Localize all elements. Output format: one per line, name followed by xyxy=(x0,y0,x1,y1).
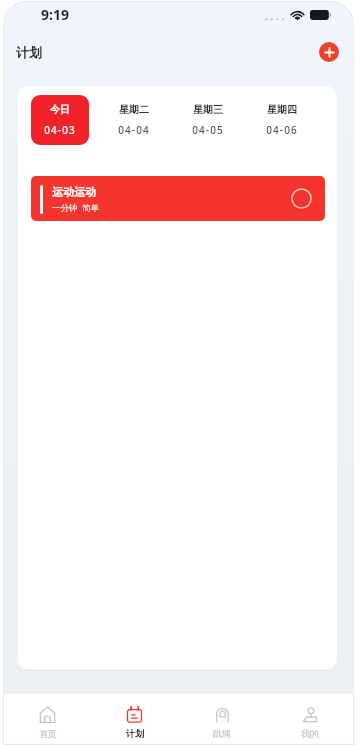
staticText: 星期三 xyxy=(193,103,223,116)
button[interactable]: 计划 xyxy=(91,694,178,745)
staticText: 04-06 xyxy=(266,123,298,137)
button[interactable]: 我的 xyxy=(266,694,354,745)
staticText: 计划 xyxy=(16,44,42,60)
staticText: 04-05 xyxy=(192,123,224,137)
staticText: 04-03 xyxy=(44,123,76,137)
staticText: 跳绳 xyxy=(213,728,231,739)
button[interactable]: Add plan xyxy=(319,42,339,62)
staticText: 运动运动 xyxy=(52,185,96,199)
button[interactable]: 首页 xyxy=(4,694,91,745)
button[interactable]: 星期二 xyxy=(105,95,163,145)
staticText: 星期二 xyxy=(119,103,149,116)
staticText: 计划 xyxy=(126,728,144,739)
button[interactable]: 跳绳 xyxy=(178,694,266,745)
staticText: 04-04 xyxy=(118,123,150,137)
button[interactable]: 运动运动 xyxy=(31,176,325,221)
button[interactable]: 今日 xyxy=(31,95,89,145)
staticText: 一分钟 简单 xyxy=(52,202,99,214)
staticText: 首页 xyxy=(39,728,57,739)
staticText: 我的 xyxy=(301,728,319,739)
staticText: 9:19 xyxy=(41,5,69,24)
staticText: 今日 xyxy=(50,103,70,116)
button[interactable]: 星期三 xyxy=(179,95,237,145)
button[interactable]: 星期四 xyxy=(253,95,311,145)
staticText: 星期四 xyxy=(267,103,297,116)
